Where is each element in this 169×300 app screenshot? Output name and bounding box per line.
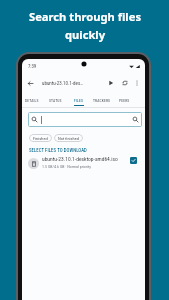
button[interactable]: STATUS — [44, 95, 67, 107]
button[interactable] — [28, 112, 142, 127]
button[interactable]: Not finished — [54, 134, 83, 142]
button[interactable]: Back — [24, 77, 36, 89]
button[interactable]: DETAILS — [22, 95, 44, 107]
button[interactable]: More options — [132, 78, 142, 88]
button[interactable]: TRACKERS — [90, 95, 113, 107]
staticText: Search through files quickly — [29, 9, 141, 42]
staticText: DETAILS — [25, 99, 39, 103]
staticText: STATUS — [49, 99, 62, 103]
button[interactable]: Finished — [29, 134, 52, 142]
staticText: 7:39 — [28, 64, 37, 70]
staticText: ubuntu-23.10.1-desktop-amd64.iso — [42, 156, 118, 162]
staticText: SELECT FILES TO DOWNLOAD — [29, 148, 87, 154]
staticText: 1.5 GB/4.6 GB · Normal priority — [42, 164, 91, 169]
staticText: Finished — [33, 136, 48, 141]
button[interactable]: Refresh — [120, 78, 130, 88]
staticText: FILES — [74, 99, 84, 103]
button[interactable]: FILES — [67, 95, 90, 107]
button[interactable]: ubuntu-23.10.1-desktop-amd64.iso — [22, 154, 145, 174]
button[interactable]: Start — [106, 78, 116, 88]
staticText: PEERS — [119, 99, 130, 103]
staticText: TRACKERS — [93, 99, 111, 103]
button[interactable]: PEERS — [113, 95, 136, 107]
staticText: ubuntu-23.10.1-des… — [42, 80, 84, 86]
button[interactable]: File selected — [130, 157, 137, 164]
staticText: Not finished — [58, 136, 79, 141]
